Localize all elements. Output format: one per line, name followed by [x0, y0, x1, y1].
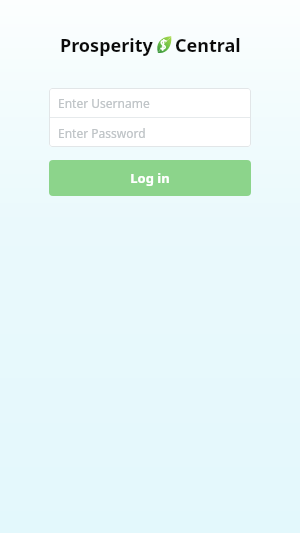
staticText: Log in [130, 169, 170, 187]
staticText: Enter Password [58, 125, 146, 141]
button[interactable]: Enter Username [49, 88, 251, 117]
staticText: Prosperity [60, 33, 153, 58]
staticText: Central [175, 33, 241, 58]
button[interactable]: Log in [49, 160, 251, 196]
button[interactable]: Enter Password [49, 118, 251, 147]
staticText: Enter Username [58, 95, 150, 111]
